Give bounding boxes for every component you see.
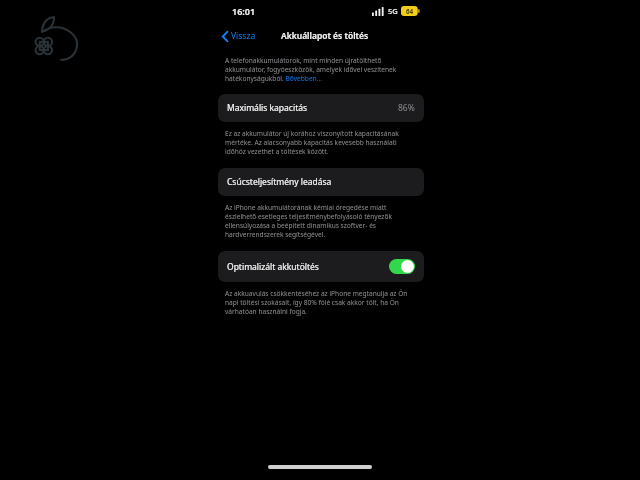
button[interactable]: Optimalizált akkutöltés kapcsoló [389, 259, 415, 274]
staticText: Az iPhone akkumulátorának kémiai öregedé… [225, 203, 417, 239]
staticText: 64 [406, 7, 414, 16]
staticText: 5G [388, 6, 398, 16]
button[interactable]: Csúcsteljesítmény leadása [218, 168, 424, 196]
staticText: 86% [398, 102, 415, 114]
staticText: Akkuállapot és töltés [281, 30, 369, 42]
staticText: Maximális kapacitás [227, 102, 308, 114]
staticText: Vissza [231, 30, 256, 42]
staticText: 16:01 [232, 5, 256, 17]
staticText: Csúcsteljesítmény leadása [227, 176, 332, 188]
staticText: Ez az akkumulátor új korához viszonyítot… [225, 129, 417, 156]
staticText: A telefonakkumulátorok, mint minden újra… [225, 56, 417, 83]
staticText: Optimalizált akkutöltés [227, 261, 319, 273]
staticText: Az akkuavulás csökkentéséhez az iPhone m… [225, 289, 417, 316]
button[interactable]: Maximális kapacitás [218, 94, 424, 122]
button[interactable]: Optimalizált akkutöltés [218, 251, 424, 282]
button[interactable]: Vissza [218, 28, 260, 44]
